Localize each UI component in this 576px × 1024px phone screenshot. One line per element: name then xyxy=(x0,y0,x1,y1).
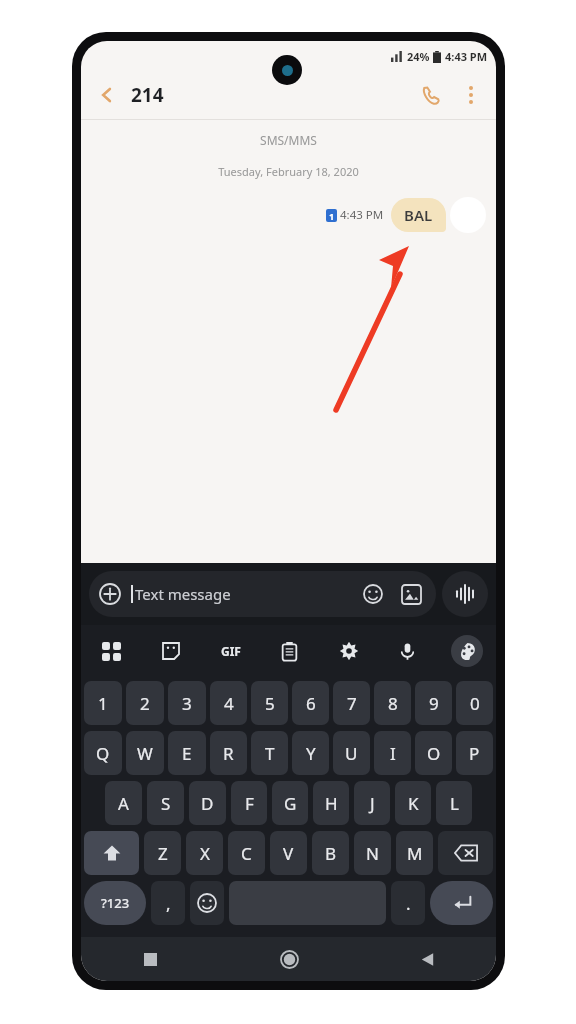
button[interactable]: W xyxy=(126,731,164,775)
staticText: 3 xyxy=(182,692,192,715)
button[interactable]: M xyxy=(396,831,433,875)
staticText: . xyxy=(406,892,411,915)
button[interactable]: E xyxy=(168,731,206,775)
staticText: P xyxy=(469,742,480,765)
staticText: BAL xyxy=(404,205,433,225)
button[interactable]: Themes xyxy=(437,625,496,677)
button[interactable]: Home xyxy=(220,937,358,981)
button[interactable]: More options xyxy=(452,76,490,114)
staticText: Q xyxy=(96,742,110,765)
button[interactable]: S xyxy=(147,781,184,825)
staticText: GIF xyxy=(221,643,241,659)
button[interactable]: X xyxy=(186,831,223,875)
button[interactable]: ?123 xyxy=(84,881,146,925)
button[interactable]: 7 xyxy=(333,681,370,725)
button[interactable]: Enter xyxy=(430,881,493,925)
button[interactable]: 9 xyxy=(415,681,452,725)
button[interactable]: T xyxy=(251,731,288,775)
staticText: 5 xyxy=(265,692,275,715)
button[interactable]: 2 xyxy=(126,681,164,725)
staticText: U xyxy=(345,742,358,765)
button[interactable]: Z xyxy=(144,831,181,875)
staticText: F xyxy=(245,792,254,815)
button[interactable]: 4 xyxy=(210,681,247,725)
staticText: M xyxy=(407,842,423,865)
button[interactable]: B xyxy=(312,831,349,875)
button[interactable]: Attach image xyxy=(396,579,426,609)
staticText: ?123 xyxy=(101,894,130,912)
button[interactable]: Emoji xyxy=(190,881,224,925)
staticText: 6 xyxy=(306,692,316,715)
staticText: W xyxy=(137,742,153,765)
staticText: 2 xyxy=(140,692,150,715)
button[interactable]: H xyxy=(313,781,349,825)
staticText: Z xyxy=(158,842,168,865)
button[interactable]: Back xyxy=(358,937,496,981)
button[interactable]: GIF xyxy=(201,625,260,677)
button[interactable]: Stickers xyxy=(141,625,201,677)
button[interactable]: Recents xyxy=(81,937,220,981)
staticText: K xyxy=(408,792,419,815)
button[interactable]: , xyxy=(151,881,185,925)
button[interactable]: . xyxy=(391,881,425,925)
button[interactable]: Back xyxy=(87,75,127,115)
button[interactable]: R xyxy=(210,731,247,775)
button[interactable]: P xyxy=(456,731,493,775)
staticText: G xyxy=(284,792,297,815)
staticText: 1 xyxy=(329,210,335,222)
button[interactable]: F xyxy=(231,781,267,825)
button[interactable]: Settings xyxy=(319,625,378,677)
button[interactable]: G xyxy=(272,781,308,825)
button[interactable]: Clipboard xyxy=(260,625,319,677)
staticText: O xyxy=(427,742,441,765)
staticText: R xyxy=(223,742,234,765)
button[interactable]: Voice input xyxy=(442,571,488,617)
staticText: A xyxy=(118,792,129,815)
staticText: 214 xyxy=(131,82,164,108)
staticText: H xyxy=(325,792,338,815)
staticText: L xyxy=(450,792,459,815)
button[interactable]: U xyxy=(333,731,370,775)
staticText: 24% xyxy=(407,49,430,64)
button[interactable] xyxy=(450,197,486,233)
staticText: N xyxy=(366,842,379,865)
staticText: 1 xyxy=(98,692,108,715)
staticText: C xyxy=(241,842,252,865)
button[interactable]: 3 xyxy=(168,681,206,725)
staticText: E xyxy=(182,742,192,765)
button[interactable]: 8 xyxy=(374,681,411,725)
staticText: D xyxy=(201,792,214,815)
button[interactable]: Y xyxy=(292,731,329,775)
button[interactable]: A xyxy=(105,781,142,825)
button[interactable]: Voice xyxy=(378,625,437,677)
button[interactable]: Q xyxy=(84,731,122,775)
staticText: Y xyxy=(306,742,316,765)
button[interactable]: C xyxy=(228,831,265,875)
button[interactable]: V xyxy=(270,831,307,875)
staticText: B xyxy=(325,842,337,865)
staticText: T xyxy=(265,742,275,765)
button[interactable]: 1 xyxy=(84,681,122,725)
button[interactable]: BAL xyxy=(391,198,446,232)
button[interactable]: N xyxy=(354,831,391,875)
button[interactable]: I xyxy=(374,731,411,775)
button[interactable]: L xyxy=(436,781,472,825)
button[interactable]: 6 xyxy=(292,681,329,725)
staticText: X xyxy=(200,842,210,865)
button[interactable]: O xyxy=(415,731,452,775)
button[interactable]: K xyxy=(395,781,431,825)
staticText: Text message xyxy=(135,584,231,604)
staticText: 8 xyxy=(388,692,398,715)
button[interactable]: Text message xyxy=(89,571,436,617)
button[interactable]: J xyxy=(354,781,390,825)
button[interactable]: Backspace xyxy=(438,831,493,875)
button[interactable]: Shift xyxy=(84,831,139,875)
button[interactable]: Apps xyxy=(81,625,141,677)
button[interactable]: 5 xyxy=(251,681,288,725)
button[interactable]: Emoji xyxy=(358,579,388,609)
button[interactable]: D xyxy=(189,781,226,825)
button[interactable]: 0 xyxy=(456,681,493,725)
staticText: J xyxy=(370,792,375,815)
button[interactable]: Call xyxy=(410,74,452,116)
